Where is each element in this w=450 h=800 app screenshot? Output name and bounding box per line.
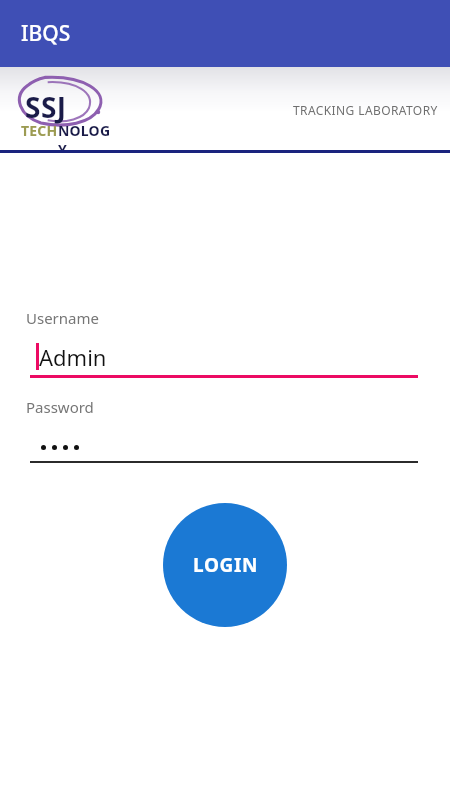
button[interactable] <box>0 425 450 463</box>
staticText: TRACKING LABORATORY <box>293 102 438 118</box>
staticText: LOGIN <box>193 552 258 578</box>
staticText: NOLOGY <box>58 121 117 159</box>
staticText: Admin <box>39 342 107 372</box>
staticText: Password <box>26 397 94 417</box>
button[interactable]: Admin <box>0 336 450 378</box>
staticText: TECH <box>21 121 58 140</box>
staticText: SSJ <box>25 88 67 126</box>
staticText: IBQS <box>21 19 71 48</box>
staticText: Username <box>26 308 99 328</box>
button[interactable]: LOGIN <box>163 503 287 627</box>
